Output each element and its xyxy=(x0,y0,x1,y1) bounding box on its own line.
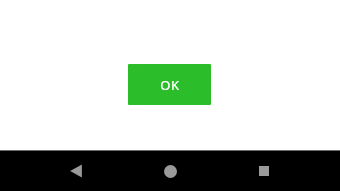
staticText: OK xyxy=(160,76,180,94)
button[interactable]: Home xyxy=(154,159,186,183)
button[interactable]: Recent apps xyxy=(248,159,280,183)
button[interactable]: Back xyxy=(60,159,92,183)
button[interactable]: OK xyxy=(128,64,211,105)
